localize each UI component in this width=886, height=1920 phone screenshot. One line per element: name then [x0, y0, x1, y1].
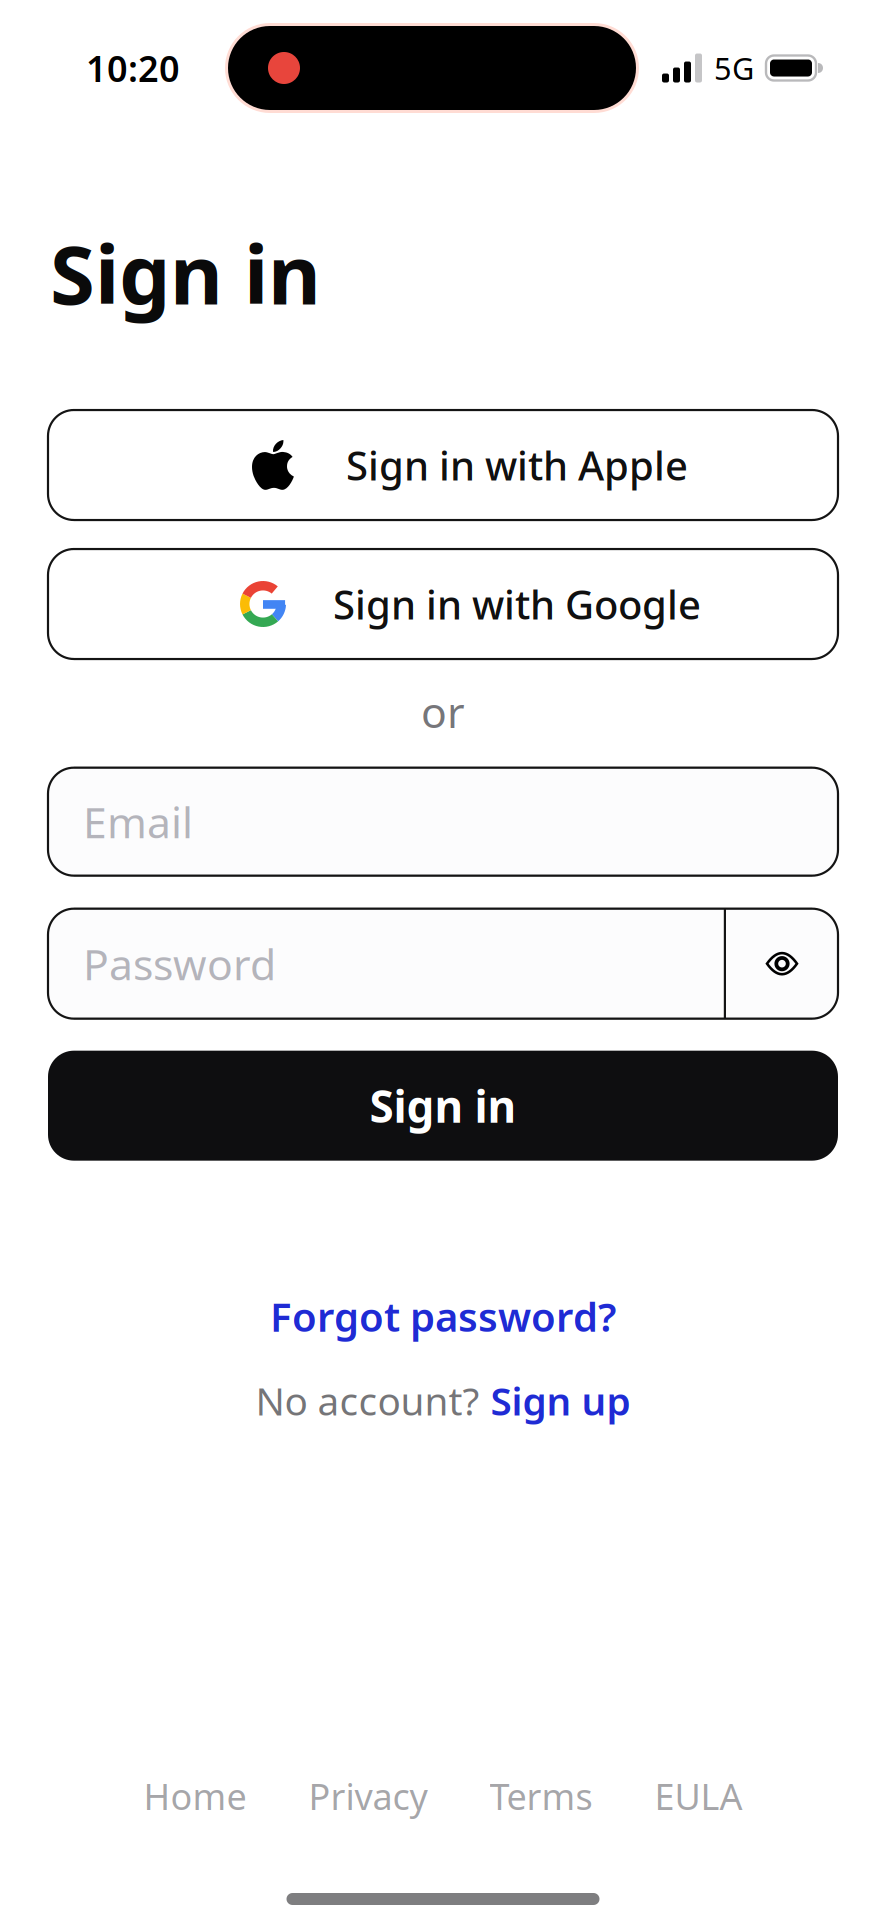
staticText: 5G — [714, 48, 754, 88]
staticText: Home — [143, 1772, 246, 1820]
staticText: No account? — [255, 1375, 479, 1426]
staticText: Forgot password? — [270, 1290, 616, 1343]
button[interactable]: EULA — [654, 1772, 742, 1820]
button[interactable]: Sign in with Apple — [48, 410, 838, 520]
button[interactable]: Sign in — [48, 1051, 838, 1161]
staticText: Sign in — [50, 219, 321, 327]
staticText: Sign in — [369, 1076, 516, 1135]
button[interactable]: Show password — [726, 909, 838, 1019]
button[interactable]: Forgot password? — [270, 1290, 616, 1343]
staticText: Email — [83, 793, 193, 850]
button[interactable]: Home — [143, 1772, 246, 1820]
button[interactable]: Terms — [489, 1772, 592, 1820]
staticText: EULA — [654, 1772, 742, 1820]
button[interactable]: Privacy — [308, 1772, 427, 1820]
staticText: or — [421, 683, 465, 740]
staticText: Terms — [489, 1772, 592, 1820]
staticText: Sign in with Apple — [346, 438, 688, 491]
staticText: Sign up — [490, 1375, 630, 1426]
staticText: 10:20 — [86, 44, 180, 92]
button[interactable]: Sign up — [490, 1375, 630, 1426]
button[interactable]: Sign in with Google — [48, 549, 838, 659]
staticText: Privacy — [308, 1772, 427, 1820]
staticText: Sign in with Google — [333, 577, 701, 630]
staticText: Password — [83, 935, 276, 992]
